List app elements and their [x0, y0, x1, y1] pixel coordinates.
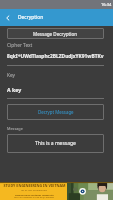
- staticText: 8qkI+UWdTlasphc2BLZDudjxYK91wBTKv: [7, 53, 106, 60]
- staticText: Key: [7, 72, 16, 79]
- staticText: 16:34: [101, 2, 112, 7]
- staticText: Cipher Text: [7, 42, 33, 49]
- staticText: Official Khoa Vietnam University: [15, 193, 54, 196]
- button[interactable]: Back: [0, 9, 15, 26]
- staticText: Top 100 University in Asia by QS Ranking: [14, 196, 54, 199]
- staticText: Message Decryption: [33, 31, 78, 37]
- staticText: STUDY ENGINEERING IN VIETNAM: [3, 183, 66, 188]
- button[interactable]: Advertisement: [0, 182, 113, 200]
- staticText: This is a message: [35, 140, 76, 147]
- staticText: A key: [7, 86, 22, 93]
- button[interactable]: Message Decryption: [7, 28, 104, 39]
- staticText: Message: [7, 126, 23, 131]
- button[interactable]: Decrypt Message: [7, 104, 104, 120]
- staticText: up to 70% scholarships: [21, 188, 47, 191]
- staticText: Decrypt Message: [38, 109, 74, 115]
- staticText: Decryption: [18, 14, 44, 21]
